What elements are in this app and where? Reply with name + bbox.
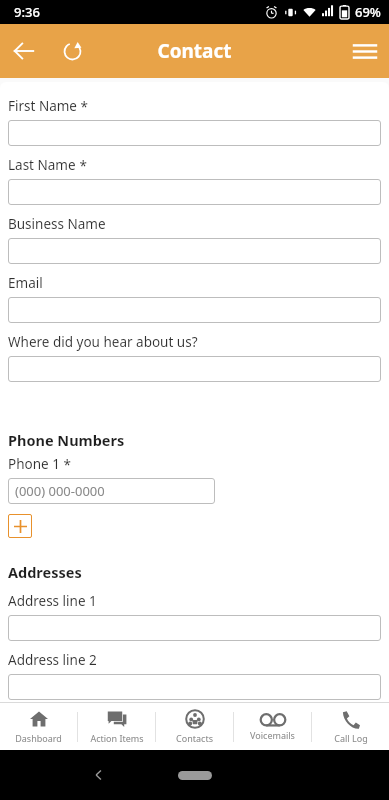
staticText: (000) 000-0000	[15, 482, 105, 500]
staticText: 69%	[355, 3, 381, 21]
button[interactable]	[8, 297, 381, 323]
staticText: Last Name	[8, 156, 76, 174]
staticText: Address line 2	[8, 651, 97, 669]
button[interactable]	[8, 615, 381, 641]
button[interactable]: Contacts	[156, 709, 233, 744]
staticText: Contacts	[176, 732, 213, 744]
button[interactable]: Menu	[341, 27, 389, 75]
staticText: Phone Numbers	[8, 430, 125, 450]
staticText: Address line 1	[8, 592, 97, 610]
button[interactable]: Voicemails	[234, 712, 311, 741]
button[interactable]: Dashboard	[0, 709, 77, 744]
staticText: Email	[8, 274, 43, 292]
other: Back	[91, 767, 107, 783]
other: Home	[178, 771, 212, 780]
staticText: Addresses	[8, 562, 82, 582]
staticText: Call Log	[334, 732, 368, 744]
button[interactable]	[8, 674, 381, 700]
staticText: 9:36	[14, 3, 40, 21]
staticText: Action Items	[90, 732, 144, 744]
staticText: *	[60, 456, 71, 474]
staticText: Voicemails	[250, 729, 295, 741]
button[interactable]: Action Items	[78, 709, 155, 744]
button[interactable]	[8, 179, 381, 205]
button[interactable]	[8, 120, 381, 146]
staticText: Phone 1	[8, 455, 60, 473]
button[interactable]: Call Log	[312, 710, 389, 744]
staticText: Business Name	[8, 215, 106, 233]
staticText: First Name	[8, 97, 77, 115]
staticText: *	[76, 157, 87, 175]
button[interactable]: Back	[0, 27, 48, 75]
staticText: Contact	[157, 38, 232, 64]
staticText: Dashboard	[15, 732, 62, 744]
button[interactable]: (000) 000-0000	[8, 478, 215, 504]
staticText: *	[77, 98, 88, 116]
button[interactable]: Refresh	[48, 27, 96, 75]
button[interactable]	[8, 356, 381, 382]
button[interactable]	[8, 238, 381, 264]
staticText: Where did you hear about us?	[8, 333, 198, 351]
button[interactable]: Add phone number	[8, 514, 32, 538]
